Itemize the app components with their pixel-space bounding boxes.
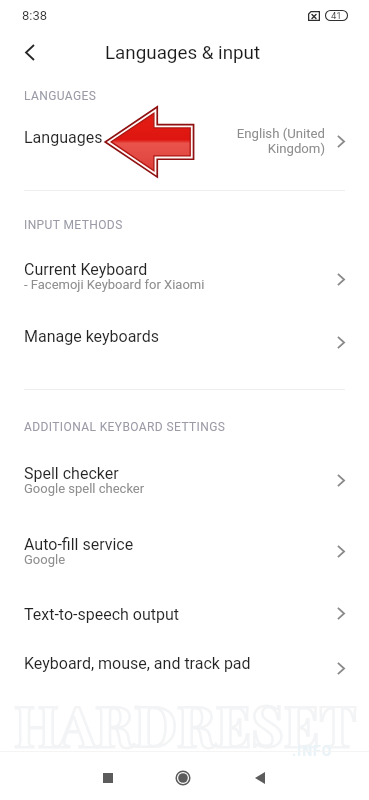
staticText: INPUT METHODS: [24, 218, 123, 232]
staticText: - Facemoji Keyboard for Xiaomi: [24, 277, 205, 292]
staticText: LANGUAGES: [24, 89, 97, 103]
button[interactable]: Text-to-speech output: [0, 605, 369, 647]
button[interactable]: Languages: [0, 116, 369, 164]
staticText: Auto-fill service: [24, 535, 134, 554]
staticText: Current Keyboard: [24, 260, 148, 279]
button[interactable]: Keyboard, mouse, and track pad: [0, 654, 369, 696]
button[interactable]: Current Keyboard: [0, 260, 369, 306]
staticText: 8:38: [22, 8, 48, 23]
button[interactable]: Back: [230, 755, 290, 800]
staticText: Google: [24, 552, 66, 567]
button[interactable]: Recent apps: [78, 755, 138, 800]
staticText: 41: [331, 10, 342, 21]
button[interactable]: Spell checker: [0, 464, 369, 510]
staticText: ADDITIONAL KEYBOARD SETTINGS: [24, 420, 226, 434]
staticText: Spell checker: [24, 464, 119, 483]
staticText: Languages: [24, 128, 103, 147]
button[interactable]: Auto-fill service: [0, 535, 369, 581]
staticText: HARDRESET: [14, 686, 357, 761]
staticText: Keyboard, mouse, and track pad: [24, 654, 251, 673]
button[interactable]: Home: [153, 755, 213, 800]
button[interactable]: Back: [15, 37, 45, 67]
staticText: English (United Kingdom): [235, 126, 325, 156]
staticText: .INFO: [292, 743, 333, 759]
staticText: Google spell checker: [24, 481, 145, 496]
staticText: Languages & input: [105, 42, 261, 64]
staticText: Text-to-speech output: [24, 605, 180, 624]
staticText: Manage keyboards: [24, 327, 159, 346]
button[interactable]: Manage keyboards: [0, 327, 369, 369]
